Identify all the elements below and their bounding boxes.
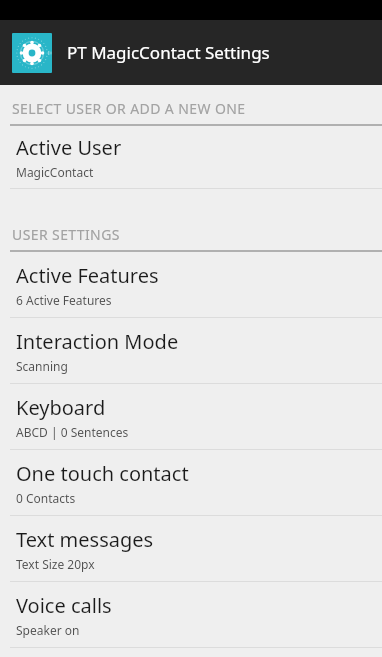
button[interactable]: Active User	[0, 126, 382, 188]
staticText: Text Size 20px	[16, 556, 95, 572]
staticText: USER SETTINGS	[12, 225, 120, 244]
staticText: 6 Active Features	[16, 292, 112, 308]
staticText: 0 Contacts	[16, 490, 76, 506]
staticText: Active Features	[16, 262, 159, 289]
staticText: Text messages	[16, 526, 154, 553]
other: App icon	[12, 33, 52, 73]
button[interactable]: Interaction Mode	[0, 318, 382, 383]
button[interactable]: One touch contact	[0, 450, 382, 515]
staticText: Keyboard	[16, 394, 106, 421]
button[interactable]: Active Features	[0, 252, 382, 317]
staticText: Voice calls	[16, 592, 112, 619]
staticText: ABCD | 0 Sentences	[16, 424, 129, 440]
staticText: SELECT USER OR ADD A NEW ONE	[12, 99, 246, 118]
staticText: PT MagicContact Settings	[67, 41, 270, 64]
staticText: MagicContact	[16, 164, 94, 180]
staticText: One touch contact	[16, 460, 189, 487]
staticText: Active User	[16, 134, 122, 161]
button[interactable]: Voice calls	[0, 582, 382, 647]
staticText: Interaction Mode	[16, 328, 179, 355]
staticText: Speaker on	[16, 622, 80, 638]
staticText: Scanning	[16, 358, 68, 374]
button[interactable]: Text messages	[0, 516, 382, 581]
button[interactable]: Keyboard	[0, 384, 382, 449]
